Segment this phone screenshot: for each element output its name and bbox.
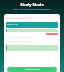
staticText: consectetur adipiscing elit sed (6, 40, 35, 43)
button[interactable] (6, 29, 58, 32)
staticText: Biology - Cell (7, 23, 18, 25)
button[interactable] (6, 45, 58, 51)
button[interactable]: Start studying (7, 67, 57, 72)
staticText: Lorem ipsum dolor sit amet (6, 36, 32, 39)
staticText: Recommended for you (6, 17, 28, 20)
button[interactable]: Biology - Cell (6, 22, 58, 28)
staticText: with 3 flashcard recommendations (13, 8, 51, 11)
staticText: Study Mode (20, 2, 44, 7)
staticText: Start studying (25, 68, 40, 71)
